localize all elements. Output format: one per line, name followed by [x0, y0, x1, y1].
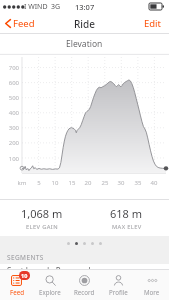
staticText: 13:07 [75, 2, 95, 12]
staticText: 3G [51, 2, 61, 12]
staticText: Ride [74, 17, 95, 31]
staticText: 1,068 m [21, 206, 63, 221]
button[interactable]: Feed [0, 270, 33, 300]
staticText: 100 [3, 155, 19, 163]
staticText: 10 [49, 179, 61, 187]
staticText: Elevation [66, 38, 103, 50]
staticText: Sant Joan de Penyagolosa [7, 265, 104, 269]
button[interactable]: More [135, 270, 169, 300]
staticText: Explore [39, 288, 61, 296]
other: Profile [113, 275, 124, 286]
staticText: 30 [115, 179, 127, 187]
staticText: Profile [109, 288, 128, 296]
other: Explore [45, 275, 56, 286]
staticText: 600 [3, 79, 19, 87]
button[interactable]: Feed [0, 13, 42, 34]
staticText: Feed [10, 288, 24, 296]
staticText: 5 [33, 179, 45, 187]
staticText: 25 [99, 179, 111, 187]
staticText: 15 [66, 179, 78, 187]
staticText: 400 [3, 109, 19, 117]
staticText: SEGMENTS [7, 253, 44, 262]
other: Feed [11, 275, 22, 286]
staticText: 40 [148, 179, 160, 187]
staticText: 500 [3, 94, 19, 102]
staticText: Record [74, 288, 95, 296]
staticText: MAX ELEV [112, 223, 142, 231]
staticText: 10 [21, 272, 28, 279]
staticText: Feed [13, 17, 35, 30]
staticText: Edit [144, 17, 162, 30]
button[interactable]: Explore [33, 270, 67, 300]
other: Record [79, 275, 90, 286]
button[interactable]: Profile [101, 270, 135, 300]
staticText: 35 [132, 179, 144, 187]
staticText: More [144, 288, 160, 296]
staticText: 618 m [110, 206, 143, 221]
other: More [147, 275, 158, 286]
button[interactable]: Edit [137, 13, 169, 34]
staticText: 300 [3, 124, 19, 132]
staticText: 200 [3, 139, 19, 147]
button[interactable]: 618 m [84, 200, 169, 236]
staticText: km [16, 179, 28, 187]
button[interactable]: Record [67, 270, 101, 300]
staticText: ELEV GAIN [26, 223, 58, 231]
staticText: I WIND [24, 2, 48, 12]
staticText: 20 [82, 179, 94, 187]
button[interactable]: 1,068 m [0, 200, 84, 236]
staticText: 700 [3, 64, 19, 72]
